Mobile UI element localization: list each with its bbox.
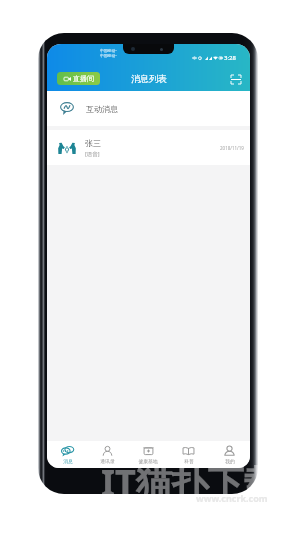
staticText: 科普 (184, 458, 194, 464)
staticText: 中国移动·· (100, 48, 118, 53)
staticText: 通讯录 (100, 458, 115, 464)
button[interactable]: 张三 (47, 130, 250, 165)
button[interactable]: 通讯录 (87, 441, 127, 468)
button[interactable]: 科普 (168, 441, 209, 468)
staticText: 中国移动·· (100, 53, 118, 58)
button[interactable]: 消息 (47, 441, 87, 468)
staticText: 消息 (63, 458, 73, 464)
staticText: 消息列表 (131, 73, 167, 84)
button[interactable]: 健康基地 (127, 441, 168, 468)
button[interactable]: 我的 (209, 441, 250, 468)
staticText: 3:28 (224, 54, 236, 62)
button[interactable]: 直播间 (57, 72, 100, 85)
staticText: IT猫扑下载 (101, 458, 280, 507)
staticText: 互动消息 (86, 104, 118, 114)
staticText: 健康基地 (138, 458, 158, 464)
staticText: 张三 (85, 138, 101, 148)
button[interactable]: 互动消息 (47, 91, 250, 126)
button[interactable]: Scan QR code (228, 71, 244, 87)
staticText: [语音] (85, 150, 100, 158)
staticText: www.cncrk.com (196, 492, 268, 504)
staticText: 我的 (225, 458, 235, 464)
staticText: 2018/11/19 (220, 145, 244, 151)
staticText: 直播间 (73, 74, 94, 83)
